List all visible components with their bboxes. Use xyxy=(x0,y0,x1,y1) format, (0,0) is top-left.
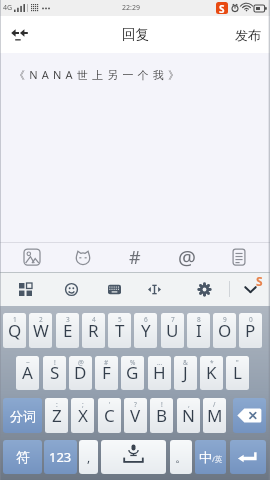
staticText: # xyxy=(104,358,109,367)
staticText: 22:29 xyxy=(122,3,140,13)
staticText: /英 xyxy=(212,454,223,464)
button[interactable]: ~ xyxy=(16,356,39,390)
staticText: … xyxy=(157,358,163,367)
staticText: 3 xyxy=(66,315,70,324)
button[interactable]: ' xyxy=(98,398,121,433)
staticText: : xyxy=(56,400,58,409)
staticText: 9 xyxy=(223,315,227,324)
staticText: P xyxy=(245,319,256,342)
staticText: 5 xyxy=(118,315,122,324)
staticText: X xyxy=(78,404,88,427)
button[interactable]: Backspace xyxy=(233,398,266,433)
button[interactable]: 4 xyxy=(82,313,105,348)
staticText: C xyxy=(104,404,115,427)
staticText: # xyxy=(129,245,141,270)
button[interactable]: 。 xyxy=(170,440,192,474)
staticText: D xyxy=(74,361,87,384)
button[interactable]: Keyboard apps xyxy=(9,273,41,306)
button[interactable]: Move cursor xyxy=(138,273,170,306)
button[interactable]: Enter xyxy=(230,440,266,474)
staticText: 《NANA世上另一个我》 xyxy=(14,67,184,82)
staticText: K xyxy=(206,361,217,384)
button[interactable]: 发布 xyxy=(231,21,265,49)
button[interactable]: ? xyxy=(124,398,147,433)
staticText: A xyxy=(22,361,33,384)
button[interactable]: 6 xyxy=(134,313,157,348)
staticText: 2 xyxy=(39,315,43,324)
button[interactable]: Insert image xyxy=(15,243,49,271)
button[interactable]: @ xyxy=(69,356,92,390)
button[interactable]: 2 xyxy=(29,313,52,348)
staticText: S xyxy=(219,2,225,14)
button[interactable]: & xyxy=(174,356,197,390)
staticText: U xyxy=(166,319,179,342)
staticText: ! xyxy=(54,358,56,367)
staticText: 8 xyxy=(197,315,201,324)
button[interactable]: , xyxy=(177,398,200,433)
button[interactable]: Insert emoji xyxy=(66,243,100,271)
staticText: Z xyxy=(52,404,62,427)
button[interactable]: 符 xyxy=(3,440,42,474)
staticText: ~ xyxy=(26,358,30,367)
button[interactable]: 1 xyxy=(3,313,26,348)
staticText: T xyxy=(115,319,125,342)
button[interactable]: Back xyxy=(4,16,34,53)
button[interactable]: : xyxy=(45,398,68,433)
button[interactable]: # xyxy=(95,356,118,390)
staticText: Q xyxy=(8,319,22,342)
button[interactable]: … xyxy=(148,356,171,390)
staticText: 。 xyxy=(175,450,187,465)
staticText: 4G xyxy=(3,3,13,13)
button[interactable]: Keyboard layout xyxy=(98,273,130,306)
button[interactable]: 9 xyxy=(213,313,236,348)
button[interactable]: 123 xyxy=(44,440,77,474)
button[interactable]: Mention xyxy=(170,243,204,271)
staticText: 符 xyxy=(16,449,30,466)
button[interactable]: ; xyxy=(71,398,94,433)
staticText: R xyxy=(88,319,99,342)
staticText: G xyxy=(126,361,139,384)
staticText: ; xyxy=(82,400,84,409)
staticText: M xyxy=(207,404,223,427)
staticText: 4 xyxy=(92,315,96,324)
button[interactable]: 7 xyxy=(161,313,184,348)
staticText: E xyxy=(63,319,73,342)
staticText: W xyxy=(33,319,49,342)
staticText: * xyxy=(210,358,214,367)
staticText: % xyxy=(130,358,136,367)
button[interactable]: ! xyxy=(150,398,173,433)
button[interactable]: % xyxy=(121,356,144,390)
staticText: 0 xyxy=(249,315,253,324)
button[interactable]: 8 xyxy=(187,313,210,348)
staticText: V xyxy=(130,404,141,427)
staticText: , xyxy=(87,449,91,465)
button[interactable]: 3 xyxy=(56,313,79,348)
staticText: 123 xyxy=(49,448,72,466)
staticText: @ xyxy=(78,358,84,367)
staticText: / xyxy=(213,400,216,409)
staticText: O xyxy=(218,319,232,342)
staticText: 6 xyxy=(144,315,148,324)
button[interactable]: 分词 xyxy=(3,398,42,433)
staticText: Y xyxy=(141,319,151,342)
button[interactable]: ! xyxy=(43,356,66,390)
staticText: , xyxy=(188,400,190,409)
button[interactable]: 0 xyxy=(239,313,262,348)
button[interactable]: Settings xyxy=(188,273,220,306)
button[interactable]: Hide keyboard xyxy=(234,273,266,306)
staticText: ? xyxy=(134,400,137,409)
button[interactable]: * xyxy=(200,356,223,390)
staticText: H xyxy=(153,361,166,384)
staticText: N xyxy=(182,404,195,427)
button[interactable]: " xyxy=(226,356,249,390)
button[interactable]: Emoji xyxy=(55,273,87,306)
staticText: 发布 xyxy=(235,27,261,43)
button[interactable]: Space / voice input xyxy=(101,440,166,474)
button[interactable]: Draft list xyxy=(222,243,256,271)
button[interactable]: , xyxy=(79,440,98,474)
button[interactable]: 5 xyxy=(108,313,131,348)
button[interactable]: 中 xyxy=(195,440,226,474)
button[interactable]: Topic xyxy=(118,243,152,271)
staticText: J xyxy=(183,361,188,384)
button[interactable]: / xyxy=(203,398,226,433)
